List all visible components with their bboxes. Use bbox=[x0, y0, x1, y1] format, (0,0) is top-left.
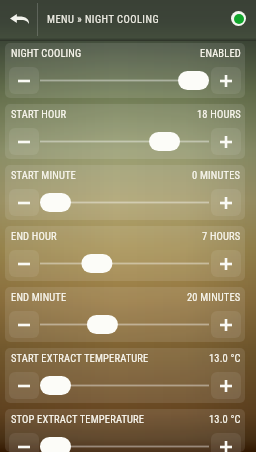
staticText: 20 MINUTES bbox=[187, 291, 241, 303]
button[interactable]: NIGHT COOLING bbox=[5, 43, 245, 98]
staticText: 13.0 °C bbox=[209, 352, 241, 364]
button[interactable]: Decrease bbox=[9, 372, 39, 399]
staticText: ENABLED bbox=[200, 47, 241, 59]
staticText: NIGHT COOLING bbox=[11, 47, 82, 59]
button[interactable]: Increase bbox=[211, 67, 241, 94]
button[interactable]: Increase bbox=[211, 250, 241, 277]
button[interactable]: Status indicator bbox=[231, 11, 246, 26]
staticText: START MINUTE bbox=[11, 169, 76, 181]
button[interactable]: Decrease bbox=[9, 433, 39, 452]
staticText: 13.0 °C bbox=[209, 413, 241, 425]
button[interactable]: Decrease bbox=[9, 67, 39, 94]
button[interactable]: Increase bbox=[211, 372, 241, 399]
staticText: END HOUR bbox=[11, 230, 57, 242]
button[interactable]: Decrease bbox=[9, 311, 39, 338]
staticText: 18 HOURS bbox=[197, 108, 241, 120]
staticText: 0 MINUTES bbox=[192, 169, 241, 181]
button[interactable]: Increase bbox=[211, 128, 241, 155]
staticText: END MINUTE bbox=[11, 291, 67, 303]
button[interactable]: Increase bbox=[211, 433, 241, 452]
button[interactable]: Increase bbox=[211, 189, 241, 216]
staticText: START HOUR bbox=[11, 108, 67, 120]
button[interactable]: START MINUTE bbox=[5, 165, 245, 220]
staticText: STOP EXTRACT TEMPERATURE bbox=[11, 413, 145, 425]
staticText: MENU » NIGHT COOLING bbox=[47, 13, 160, 25]
button[interactable]: Decrease bbox=[9, 250, 39, 277]
button[interactable]: STOP EXTRACT TEMPERATURE bbox=[5, 409, 245, 452]
button[interactable]: END MINUTE bbox=[5, 287, 245, 342]
staticText: START EXTRACT TEMPERATURE bbox=[11, 352, 149, 364]
button[interactable]: Increase bbox=[211, 311, 241, 338]
button[interactable]: END HOUR bbox=[5, 226, 245, 281]
staticText: 7 HOURS bbox=[202, 230, 241, 242]
button[interactable]: Decrease bbox=[9, 128, 39, 155]
button[interactable]: START EXTRACT TEMPERATURE bbox=[5, 348, 245, 403]
button[interactable]: Decrease bbox=[9, 189, 39, 216]
button[interactable]: START HOUR bbox=[5, 104, 245, 159]
button[interactable]: Back bbox=[0, 0, 38, 38]
